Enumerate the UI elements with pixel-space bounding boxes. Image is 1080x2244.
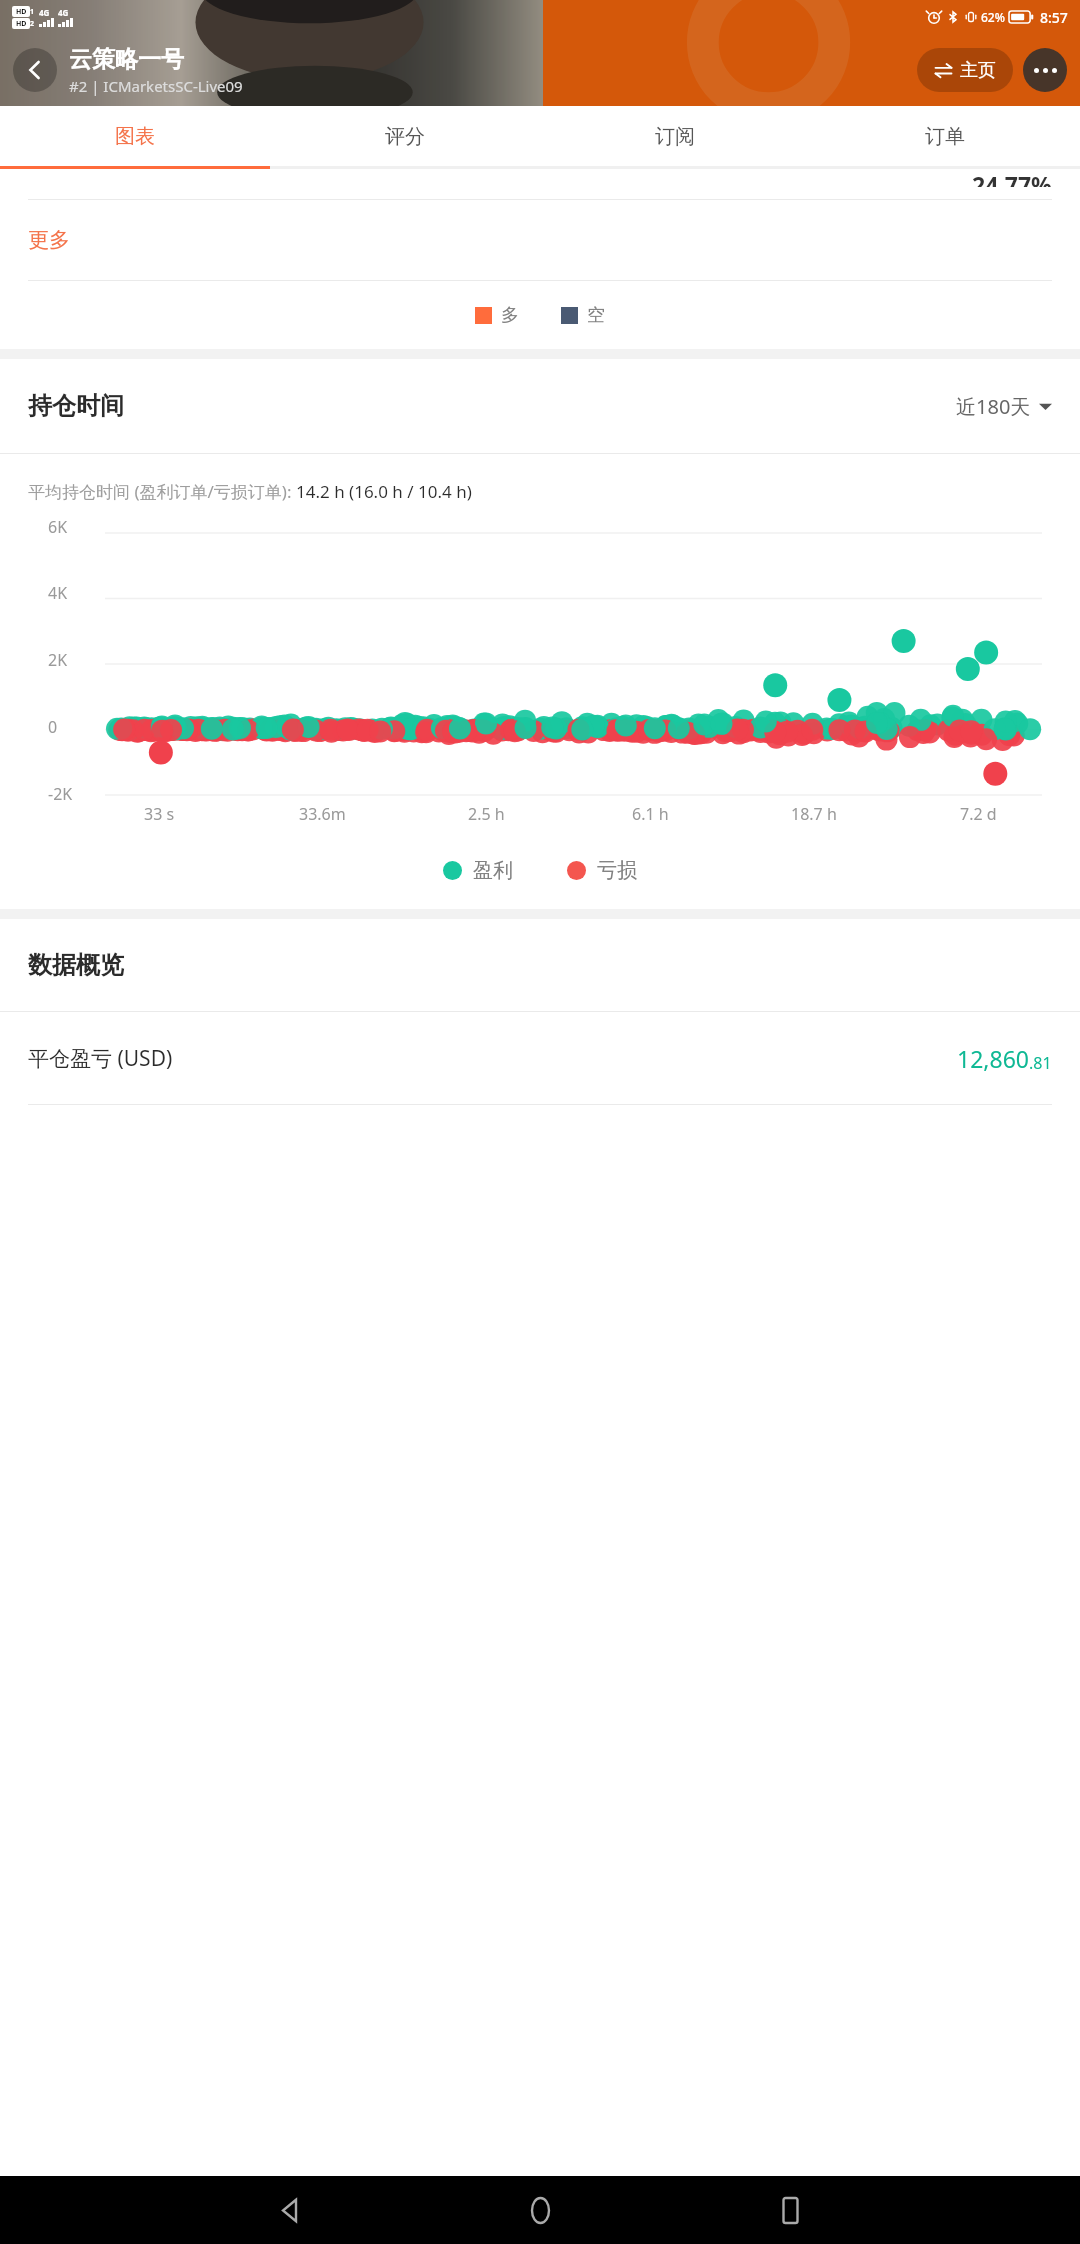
staticText: 亏损 — [597, 858, 637, 883]
staticText: 7.2 d — [960, 803, 997, 825]
button[interactable]: Back — [13, 48, 57, 92]
button[interactable]: 平仓盈亏 (USD) — [0, 1012, 1080, 1104]
button[interactable]: 更多 — [0, 200, 1080, 280]
staticText: 订单 — [925, 124, 965, 149]
staticText: 4G — [58, 7, 69, 18]
staticText: 订阅 — [655, 124, 695, 149]
staticText: 4K — [48, 582, 68, 604]
staticText: HD — [16, 19, 27, 29]
staticText: -2K — [48, 783, 73, 805]
staticText: 0 — [48, 716, 58, 738]
staticText: 6.1 h — [632, 803, 669, 825]
button[interactable]: 评分 — [270, 106, 540, 166]
staticText: 数据概览 — [28, 950, 124, 980]
button[interactable]: 订单 — [810, 106, 1080, 166]
staticText: 2.5 h — [468, 803, 505, 825]
staticText: 评分 — [385, 124, 425, 149]
staticText: 33 s — [144, 803, 175, 825]
staticText: 6K — [48, 516, 68, 538]
button[interactable]: 图表 — [0, 106, 270, 166]
button[interactable]: Home — [512, 2182, 568, 2238]
staticText: 18.7 h — [791, 803, 837, 825]
staticText: 2K — [48, 649, 68, 671]
staticText: 24.77% — [972, 169, 1052, 187]
staticText: 1 — [30, 7, 35, 17]
staticText: 空 — [587, 304, 605, 327]
staticText: 持仓时间 — [28, 391, 124, 421]
staticText: 平均持仓时间 (盈利订单/亏损订单): — [28, 480, 296, 503]
staticText: 云策略一号 — [69, 45, 184, 74]
staticText: 8:57 — [1040, 8, 1068, 27]
button[interactable]: 近180天 — [956, 393, 1052, 420]
staticText: 多 — [501, 304, 519, 327]
staticText: 2 — [30, 19, 35, 29]
button[interactable]: More options — [1023, 48, 1067, 92]
staticText: .81 — [1029, 1052, 1052, 1074]
staticText: 近180天 — [956, 393, 1031, 420]
button[interactable]: 订阅 — [540, 106, 810, 166]
button[interactable]: 主页 — [917, 48, 1013, 92]
staticText: 更多 — [28, 227, 70, 253]
staticText: #2 | ICMarketsSC-Live09 — [69, 76, 243, 96]
staticText: 12,860 — [957, 1043, 1029, 1074]
staticText: 主页 — [960, 59, 996, 82]
staticText: 33.6m — [299, 803, 346, 825]
staticText: 62% — [981, 9, 1005, 25]
staticText: HD — [16, 7, 27, 17]
staticText: 4G — [39, 7, 50, 18]
button[interactable]: Back — [262, 2182, 318, 2238]
staticText: 盈利 — [473, 858, 513, 883]
button[interactable]: Recent apps — [762, 2182, 818, 2238]
staticText: 平仓盈亏 (USD) — [28, 1044, 173, 1073]
staticText: 图表 — [115, 124, 155, 149]
staticText: 14.2 h (16.0 h / 10.4 h) — [296, 480, 472, 503]
